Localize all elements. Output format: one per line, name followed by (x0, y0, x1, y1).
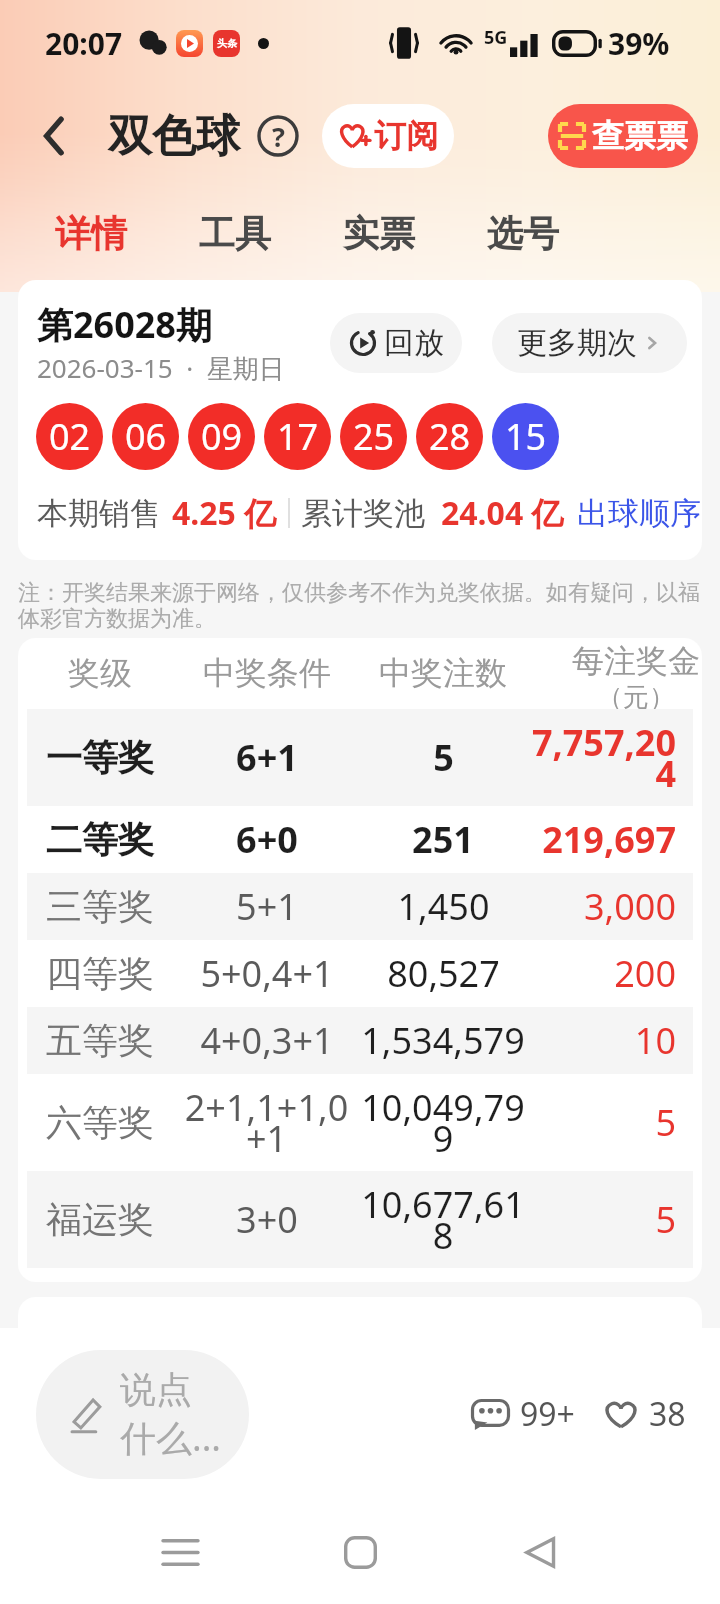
staticText: 本期销售 (37, 494, 161, 533)
staticText: 80,527 (387, 949, 500, 998)
staticText: 2026-03-15 · 星期日 (37, 350, 285, 386)
staticText: 39% (608, 23, 670, 64)
staticText: ? (272, 118, 285, 155)
staticText: 第26028期 (37, 300, 212, 349)
button[interactable]: Back (26, 107, 84, 165)
staticText: 注：开奖结果来源于网络，仅供参考不作为兑奖依据。如有疑问，以福体彩官方数据为准。 (18, 579, 704, 633)
staticText: 二等奖 (46, 817, 154, 862)
staticText: 3,000 (583, 882, 676, 931)
button[interactable]: 回放 (330, 313, 462, 373)
button[interactable]: 出球顺序 (577, 494, 701, 533)
staticText: 10,677,618 (360, 1180, 526, 1259)
staticText: 25 (353, 412, 395, 461)
button[interactable]: 订阅 (322, 104, 454, 168)
staticText: 10 (634, 1016, 676, 1065)
staticText: 200 (614, 949, 676, 998)
button[interactable]: 查票票 (548, 104, 698, 168)
staticText: 详情 (55, 211, 127, 256)
staticText: 5 (655, 1098, 676, 1147)
staticText: 工具 (199, 211, 271, 256)
staticText: 实票 (343, 211, 415, 256)
button[interactable]: Home (270, 1500, 450, 1604)
staticText: 更多期次 (517, 324, 637, 362)
staticText: 6+0 (236, 815, 298, 864)
staticText: 15 (505, 412, 547, 461)
staticText: 奖级 (68, 653, 132, 693)
staticText: 4+0,3+1 (200, 1016, 334, 1065)
staticText: 三等奖 (46, 884, 154, 929)
staticText: 五等奖 (46, 1018, 154, 1063)
staticText: 累计奖池 (301, 494, 425, 533)
button[interactable]: 二等奖 (27, 806, 693, 873)
button[interactable]: 工具 (199, 211, 271, 256)
staticText: 六等奖 (46, 1100, 154, 1145)
button[interactable]: 六等奖 (27, 1074, 693, 1171)
staticText: 02 (49, 412, 91, 461)
staticText: 219,697 (542, 815, 676, 864)
staticText: 头条 (217, 37, 237, 50)
staticText: 24.04 亿 (441, 491, 564, 535)
staticText: 2+1,1+1,0+1 (179, 1083, 354, 1162)
staticText: 选号 (487, 211, 559, 256)
button[interactable]: 选号 (487, 211, 559, 256)
staticText: 5+1 (236, 882, 298, 931)
staticText: 251 (412, 815, 474, 864)
staticText: 一等奖 (46, 735, 154, 780)
staticText: 28 (429, 412, 471, 461)
staticText: 06 (125, 412, 167, 461)
staticText: 20:07 (45, 23, 123, 64)
staticText: 双色球 (108, 109, 240, 164)
button[interactable]: 详情 (55, 211, 127, 256)
button[interactable]: 三等奖 (27, 873, 693, 940)
staticText: 每注奖金 (572, 641, 700, 681)
button[interactable]: 四等奖 (27, 940, 693, 1007)
button[interactable]: 五等奖 (27, 1007, 693, 1074)
staticText: 1,534,579 (361, 1016, 525, 1065)
staticText: 回放 (384, 324, 444, 362)
staticText: 17 (277, 412, 319, 461)
staticText: 3+0 (236, 1195, 298, 1244)
staticText: 福运奖 (46, 1197, 154, 1242)
button[interactable]: Help (252, 110, 304, 162)
button[interactable]: Back (450, 1500, 630, 1604)
staticText: 四等奖 (46, 951, 154, 996)
staticText: 7,757,204 (526, 718, 676, 797)
staticText: 10,049,799 (360, 1083, 526, 1162)
button[interactable]: 38 (604, 1384, 686, 1444)
staticText: 5 (433, 733, 454, 782)
staticText: （元） (597, 681, 675, 712)
staticText: 4.25 亿 (172, 491, 277, 535)
staticText: 5G (484, 25, 508, 47)
staticText: 5+0,4+1 (200, 949, 334, 998)
button[interactable]: 99+ (471, 1384, 575, 1444)
staticText: 说点什么... (120, 1367, 222, 1462)
staticText: 订阅 (374, 116, 438, 156)
button[interactable]: 说点什么... (36, 1350, 249, 1479)
staticText: 1,450 (397, 882, 490, 931)
staticText: 出球顺序 (577, 494, 701, 533)
staticText: 09 (201, 412, 243, 461)
button[interactable]: Recents (90, 1500, 270, 1604)
staticText: 6+1 (236, 733, 298, 782)
staticText: 中奖注数 (379, 653, 507, 693)
staticText: 中奖条件 (203, 653, 331, 693)
button[interactable]: 更多期次 (492, 313, 687, 373)
staticText: 查票票 (592, 116, 688, 156)
button[interactable]: 实票 (343, 211, 415, 256)
staticText: 38 (649, 1392, 686, 1436)
button[interactable]: 一等奖 (27, 709, 693, 806)
staticText: 99+ (520, 1392, 575, 1436)
button[interactable]: 福运奖 (27, 1171, 693, 1268)
staticText: 5 (655, 1195, 676, 1244)
